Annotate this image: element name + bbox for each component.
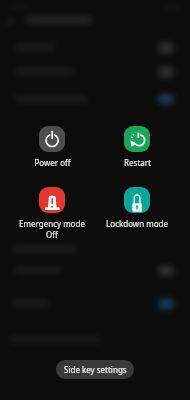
button[interactable]: Emergency mode: [19, 187, 85, 240]
staticText: Emergency mode: [19, 218, 85, 229]
staticText: Power off: [34, 157, 71, 168]
staticText: Lockdown mode: [106, 218, 168, 229]
staticText: Side key settings: [64, 364, 127, 375]
button[interactable]: Side key settings: [56, 360, 134, 379]
staticText: Restart: [124, 157, 151, 168]
button[interactable]: Lockdown mode: [104, 187, 170, 229]
button[interactable]: Power off: [19, 126, 85, 168]
staticText: Off: [46, 229, 58, 240]
button[interactable]: Restart: [104, 126, 170, 168]
